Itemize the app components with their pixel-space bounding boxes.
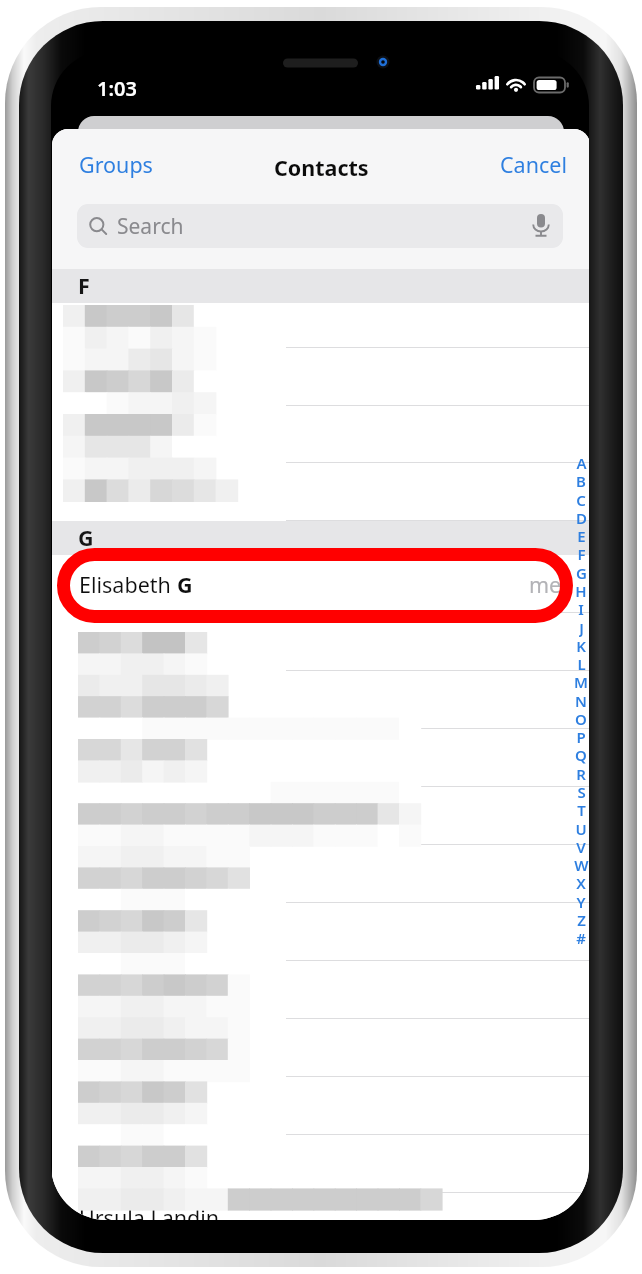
button[interactable] [52,845,589,903]
staticText: E [577,526,586,545]
staticText: F [78,271,90,300]
staticText: Contacts [274,153,369,182]
staticText: H [575,581,587,600]
button[interactable]: Voice search [526,211,556,241]
staticText: G [177,570,193,599]
staticText: S [577,782,586,801]
staticText: Q [575,745,587,764]
button[interactable] [52,613,589,671]
staticText: G [78,523,94,552]
button[interactable]: Elisabeth [52,555,589,613]
button[interactable] [52,787,589,845]
staticText: O [575,709,587,728]
button[interactable] [52,903,589,961]
staticText: K [576,636,586,655]
staticText: X [576,873,586,892]
staticText: L [577,654,586,673]
staticText: N [575,691,587,710]
button[interactable]: Groups [68,142,164,187]
staticText: # [576,928,586,947]
button[interactable] [52,1077,589,1135]
button[interactable] [52,348,589,406]
staticText: Groups [79,150,153,179]
button[interactable] [52,303,589,348]
staticText: U [575,819,587,838]
staticText: I [578,599,584,618]
staticText: Y [576,892,586,911]
staticText: Z [577,910,586,929]
staticText: G [576,563,587,582]
button[interactable] [52,671,589,729]
button[interactable]: Alphabet index [569,453,589,953]
button[interactable]: Search [77,204,563,248]
staticText: Ursula Landin [79,1203,220,1220]
staticText: C [576,490,586,509]
staticText: M [574,672,588,691]
button[interactable] [52,961,589,1019]
staticText: A [576,453,587,472]
staticText: W [574,855,589,874]
staticText: Elisabeth [79,570,177,599]
button[interactable]: Cancel [489,142,578,187]
staticText: V [576,837,586,856]
staticText: Search [117,212,184,241]
button[interactable] [52,1193,589,1220]
staticText: R [576,764,586,783]
button[interactable] [52,729,589,787]
staticText: F [577,544,586,563]
staticText: 1:03 [97,75,137,102]
staticText: D [576,508,587,527]
button[interactable] [52,1135,589,1193]
button[interactable] [52,1019,589,1077]
staticText: P [576,727,586,746]
staticText: me [529,570,562,599]
staticText: J [579,618,584,637]
staticText: Cancel [500,150,567,179]
button[interactable] [52,406,589,463]
button[interactable] [52,463,589,521]
staticText: T [577,800,586,819]
staticText: B [576,471,586,490]
